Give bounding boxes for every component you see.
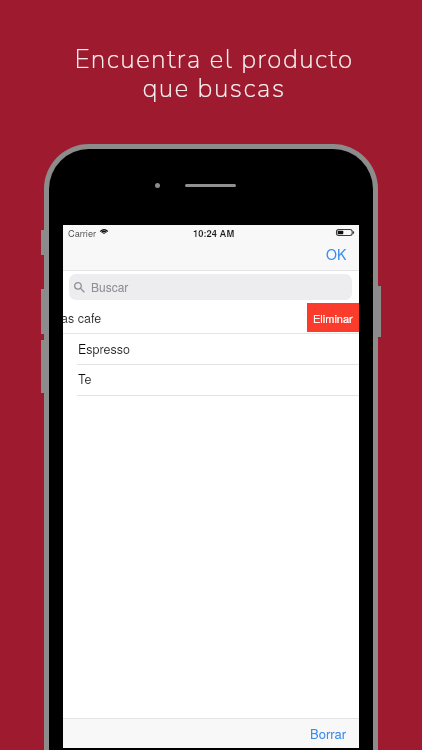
other: Battery (336, 229, 354, 236)
staticText: Borrar (310, 724, 347, 743)
staticText: OK (326, 244, 347, 264)
button[interactable]: Buscar (69, 274, 352, 300)
staticText: Te (78, 370, 92, 388)
button[interactable]: OK (312, 242, 360, 266)
staticText: Eliminar (313, 310, 353, 326)
staticText: Espresso (78, 340, 130, 358)
button[interactable]: Borrar (303, 720, 353, 746)
button[interactable]: Espresso (63, 334, 359, 364)
button[interactable]: Te (63, 364, 359, 394)
staticText: 10:24 AM (193, 226, 235, 239)
staticText: Carrier (68, 226, 97, 239)
staticText: as cafe (61, 309, 102, 327)
staticText: Encuentra el producto que buscas (74, 41, 354, 106)
button[interactable]: Eliminar (307, 303, 359, 332)
staticText: Buscar (91, 278, 129, 295)
other: Wi-Fi (99, 226, 109, 234)
